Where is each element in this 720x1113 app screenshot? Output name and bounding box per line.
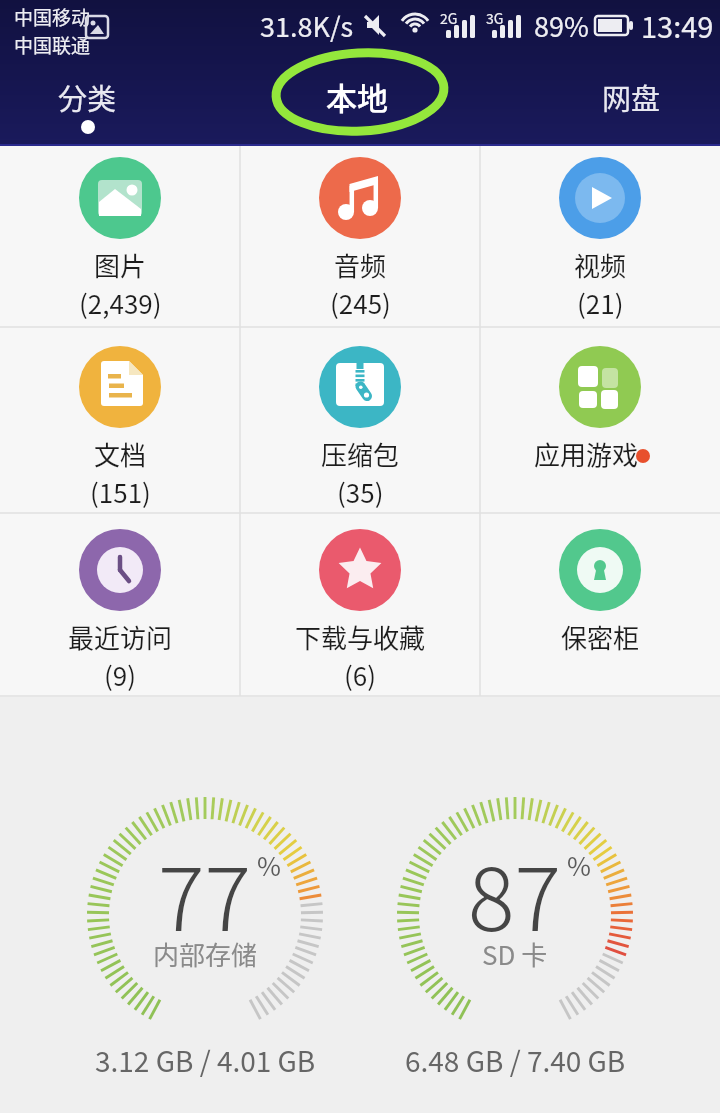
staticText: 3G	[486, 8, 504, 28]
staticText: 31.8K/s	[260, 6, 354, 45]
staticText: (151)	[90, 473, 151, 511]
staticText: 保密柜	[561, 618, 640, 656]
staticText: 3.12 GB / 4.01 GB	[95, 1040, 316, 1081]
staticText: 89%	[534, 6, 589, 45]
staticText: 2G	[440, 8, 458, 28]
button[interactable]: 下载与收藏	[240, 513, 480, 697]
staticText: 中国联通	[14, 31, 91, 59]
staticText: 最近访问	[68, 618, 173, 656]
staticText: 87	[468, 830, 562, 956]
staticText: (21)	[577, 284, 624, 322]
button[interactable]: 保密柜	[480, 513, 720, 697]
button[interactable]: 图片	[0, 146, 240, 327]
button[interactable]: 分类	[58, 76, 117, 118]
staticText: (35)	[337, 473, 384, 511]
staticText: 分类	[58, 76, 117, 118]
staticText: 本地	[326, 74, 388, 119]
staticText: %	[257, 846, 281, 884]
staticText: (245)	[330, 284, 391, 322]
button[interactable]: 压缩包	[240, 327, 480, 513]
button[interactable]: 最近访问	[0, 513, 240, 697]
staticText: 文档	[94, 435, 147, 473]
button[interactable]: 应用游戏	[480, 327, 720, 513]
staticText: 应用游戏	[534, 435, 639, 473]
staticText: (2,439)	[79, 284, 162, 322]
button[interactable]: 网盘	[602, 76, 661, 118]
staticText: 下载与收藏	[295, 618, 426, 656]
staticText: (9)	[104, 656, 137, 694]
button[interactable]: 文档	[0, 327, 240, 513]
staticText: (6)	[344, 656, 377, 694]
button[interactable]: 视频	[480, 146, 720, 327]
button[interactable]: 本地	[326, 74, 388, 119]
staticText: 视频	[574, 246, 627, 284]
button[interactable]: 音频	[240, 146, 480, 327]
staticText: 6.48 GB / 7.40 GB	[405, 1040, 626, 1081]
staticText: 中国移动	[14, 3, 91, 31]
staticText: %	[567, 846, 591, 884]
staticText: 音频	[334, 246, 387, 284]
staticText: 内部存储	[153, 935, 258, 973]
staticText: 图片	[94, 246, 147, 284]
staticText: 压缩包	[321, 435, 400, 473]
staticText: SD 卡	[482, 935, 548, 973]
staticText: 13:49	[641, 4, 714, 46]
staticText: 77	[158, 830, 252, 956]
staticText: 网盘	[602, 76, 661, 118]
